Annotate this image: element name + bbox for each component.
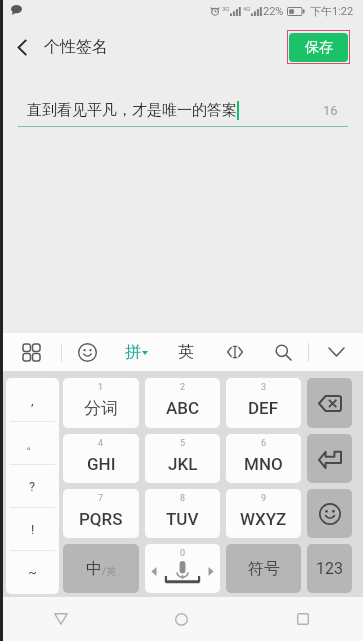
button[interactable]: 5 — [145, 434, 220, 483]
button[interactable]: Search — [259, 333, 308, 371]
button[interactable]: Home — [121, 597, 242, 641]
staticText: 。 — [26, 436, 39, 452]
button[interactable]: ? — [6, 465, 59, 508]
button[interactable]: 符号 — [226, 544, 301, 593]
staticText: 个性签名 — [44, 37, 108, 57]
staticText: , — [31, 393, 34, 408]
staticText: MNO — [244, 454, 283, 474]
staticText: 7 — [98, 493, 104, 504]
button[interactable]: 保存 — [289, 33, 348, 62]
button[interactable]: 9 — [226, 489, 301, 538]
staticText: WXYZ — [240, 509, 287, 529]
staticText: ~ — [28, 565, 37, 580]
button[interactable]: 中 — [63, 544, 139, 593]
button[interactable]: Hide keyboard — [309, 333, 363, 371]
staticText: /英 — [102, 565, 117, 578]
staticText: 直到看见平凡，才是唯一的答案 — [27, 101, 237, 120]
staticText: 0 — [180, 548, 186, 559]
button[interactable]: 4 — [63, 434, 139, 483]
button[interactable]: 7 — [63, 489, 139, 538]
button[interactable]: , — [6, 378, 59, 422]
staticText: 符号 — [248, 559, 280, 579]
staticText: 拼 — [125, 342, 141, 362]
button[interactable]: 2 — [145, 378, 220, 428]
staticText: JKL — [168, 454, 198, 474]
staticText: 4G — [243, 5, 251, 12]
staticText: 16 — [323, 103, 338, 118]
button[interactable]: ! — [6, 508, 59, 551]
button[interactable]: 。 — [6, 422, 59, 465]
button[interactable]: 英 — [161, 333, 210, 371]
button[interactable]: enter — [307, 434, 352, 483]
button[interactable]: 6 — [226, 434, 301, 483]
staticText: ABC — [166, 398, 200, 418]
staticText: 保存 — [305, 39, 333, 57]
button[interactable]: Keyboard layouts — [0, 333, 61, 371]
button[interactable]: ~ — [6, 551, 59, 594]
button[interactable]: Emoji — [62, 333, 112, 371]
button[interactable]: emoji — [307, 489, 352, 538]
staticText: 22% — [263, 5, 284, 18]
staticText: ! — [31, 522, 35, 537]
staticText: GHI — [87, 454, 116, 474]
button[interactable]: backspace — [307, 378, 352, 428]
staticText: 1 — [98, 382, 104, 393]
staticText: 分词 — [84, 398, 118, 419]
staticText: 123 — [316, 559, 343, 578]
button[interactable]: 8 — [145, 489, 220, 538]
button[interactable]: 123 — [307, 544, 352, 593]
staticText: 3 — [261, 382, 267, 393]
staticText: 3G — [222, 5, 230, 12]
staticText: DEF — [248, 398, 279, 418]
staticText: 英 — [178, 342, 194, 362]
staticText: 下午1:22 — [310, 4, 354, 18]
button[interactable]: Move cursor — [210, 333, 259, 371]
button[interactable]: 1 — [63, 378, 139, 428]
staticText: ? — [29, 479, 36, 494]
staticText: 6 — [261, 438, 267, 449]
staticText: TUV — [166, 509, 199, 529]
button[interactable]: 3 — [226, 378, 301, 428]
button[interactable]: Recents — [242, 597, 363, 641]
staticText: 中 — [86, 559, 102, 579]
staticText: 9 — [261, 493, 267, 504]
staticText: 5 — [180, 438, 186, 449]
staticText: PQRS — [79, 509, 123, 529]
button[interactable]: 拼 — [112, 333, 161, 371]
button[interactable]: Voice input — [145, 544, 220, 593]
button[interactable]: Back — [0, 597, 121, 641]
button[interactable]: 个性签名 — [0, 22, 120, 72]
staticText: 2 — [180, 382, 186, 393]
staticText: 4 — [98, 438, 104, 449]
staticText: 8 — [180, 493, 186, 504]
